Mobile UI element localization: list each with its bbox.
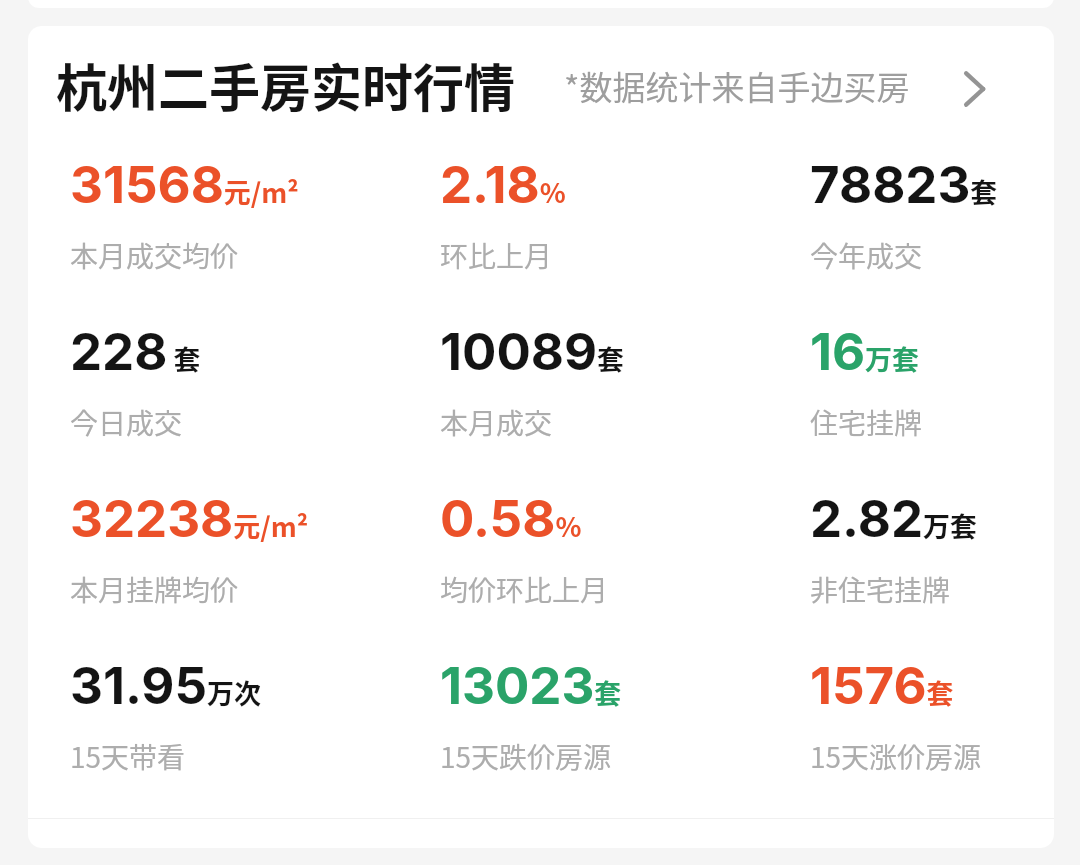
staticText: *数据统计来自手边买房	[564, 62, 910, 110]
staticText: 本月成交	[440, 402, 553, 443]
staticText: 本月成交均价	[70, 235, 239, 276]
staticText: 15天跌价房源	[440, 736, 612, 777]
staticText: 78823套	[810, 154, 998, 216]
staticText: 非住宅挂牌	[810, 569, 951, 610]
staticText: 杭州二手房实时行情	[56, 48, 516, 122]
staticText: 228 套	[70, 321, 201, 383]
staticText: 本月挂牌均价	[70, 569, 239, 610]
staticText: 2.18%	[440, 154, 566, 216]
staticText: 15天带看	[70, 736, 186, 777]
staticText: 住宅挂牌	[810, 402, 923, 443]
staticText: 16万套	[810, 321, 920, 383]
staticText: 均价环比上月	[440, 569, 609, 610]
staticText: 1576套	[810, 655, 954, 717]
staticText: 10089套	[440, 321, 625, 383]
staticText: 今年成交	[810, 235, 923, 276]
staticText: 15天涨价房源	[810, 736, 982, 777]
staticText: 环比上月	[440, 235, 553, 276]
staticText: 13023套	[440, 655, 622, 717]
staticText: 0.58%	[440, 488, 582, 550]
staticText: 今日成交	[70, 402, 183, 443]
staticText: 32238元/m²	[70, 488, 309, 550]
other: 查看详情	[951, 66, 997, 112]
staticText: 2.82万套	[810, 488, 978, 550]
button[interactable]: 杭州二手房实时行情	[28, 26, 1054, 152]
staticText: 31568元/m²	[70, 154, 299, 216]
staticText: 31.95万次	[70, 655, 262, 717]
